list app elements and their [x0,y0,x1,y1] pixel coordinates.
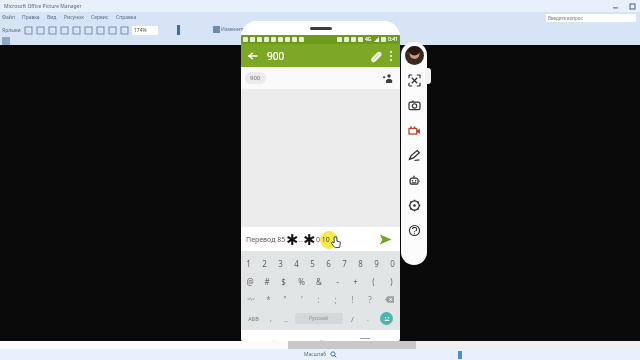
button[interactable]: 4 [288,254,304,272]
button[interactable]: Emoji [375,309,398,328]
staticText: : [317,294,320,305]
button[interactable]: : [310,290,327,309]
button[interactable]: * [260,290,276,309]
staticText: =\< [247,296,255,303]
button[interactable]: , [263,309,278,328]
button[interactable]: " [276,290,293,309]
button[interactable]: Tool 3 [60,26,69,35]
staticText: % [298,276,305,287]
button[interactable]: Attach [366,47,384,65]
button[interactable]: Tool 2 [48,26,57,35]
staticText: Изменить рисунки [221,26,267,33]
staticText: Ярлыки [2,27,21,34]
staticText: Русский [309,315,329,322]
button[interactable]: ) [382,272,400,290]
button[interactable]: Русский [295,313,343,324]
staticText: 2 [262,258,267,269]
button[interactable]: Справка [116,14,137,21]
button[interactable]: Fullscreen [404,70,424,90]
button[interactable]: Send [376,230,394,248]
button[interactable]: Tool 4 [72,26,81,35]
button[interactable]: Вид [47,14,57,21]
staticText: - [336,276,339,287]
button[interactable]: Help [404,220,424,240]
button[interactable]: 7 [336,254,352,272]
staticText: ✱ [286,231,299,248]
button[interactable]: ; [327,290,344,309]
staticText: 9 [374,258,379,269]
button[interactable]: ! [344,290,361,309]
staticText: & [316,276,322,287]
button[interactable]: 8 [352,254,368,272]
button[interactable]: 5 [304,254,320,272]
button[interactable]: Рисунок [64,14,84,21]
button[interactable]: Profile [405,46,424,65]
button[interactable]: Tool 1 [36,26,45,35]
button[interactable]: Файл [2,14,15,21]
button[interactable]: # [258,272,275,290]
staticText: 8 [358,258,363,269]
button[interactable]: Minimize [612,3,619,10]
button[interactable]: $ [275,272,292,290]
button[interactable]: / [345,309,360,328]
button[interactable]: Backspace [378,290,400,309]
button[interactable]: Settings [404,195,424,215]
staticText: ( [372,276,375,287]
button[interactable]: Screenshot [404,95,424,115]
staticText: Вид [47,14,57,21]
button[interactable]: Recents [356,332,374,350]
button[interactable]: Add person [381,71,395,85]
button[interactable]: Robot [404,170,424,190]
button[interactable]: % [292,272,310,290]
button[interactable]: АБВ [243,309,263,328]
button[interactable]: Введите вопрос [546,14,636,22]
button[interactable]: Сервис [91,14,109,21]
button[interactable]: 6 [320,254,336,272]
button[interactable]: + [346,272,364,290]
button[interactable]: Back [267,332,285,350]
button[interactable]: ( [364,272,382,290]
staticText: 5 [310,258,315,269]
button[interactable]: _ [278,309,293,328]
staticText: * [266,294,271,305]
staticText: 0:41 [388,36,398,43]
staticText: АБВ [248,315,259,322]
button[interactable]: & [310,272,328,290]
button[interactable]: 3 [272,254,288,272]
button[interactable]: @ [241,272,258,290]
button[interactable]: Record [404,120,424,140]
staticText: Файл [2,14,15,21]
button[interactable]: 9 [368,254,384,272]
button[interactable]: Home [312,332,330,350]
button[interactable]: Tool 6 [96,26,105,35]
button[interactable]: - [328,272,346,290]
staticText: ! [351,294,354,305]
button[interactable]: Tool 5 [84,26,93,35]
button[interactable]: 2 [256,254,272,272]
button[interactable]: 900 [245,72,266,84]
button[interactable]: ' [293,290,310,309]
button[interactable]: =\< [241,290,260,309]
button[interactable]: 174% [132,26,158,35]
staticText: Microsoft Office Picture Manager [4,3,82,10]
button[interactable]: More options [384,49,398,63]
button[interactable]: Restore [629,3,636,10]
button[interactable]: ? [361,290,378,309]
button[interactable]: Правка [22,14,40,21]
button[interactable]: Изменить рисунки [213,26,267,35]
button[interactable]: Tool 8 [120,26,129,35]
button[interactable]: 1 [241,254,256,272]
button[interactable]: Back [245,48,261,64]
staticText: / [351,314,354,324]
button[interactable]: 0 [384,254,400,272]
button[interactable]: Tool 7 [108,26,117,35]
staticText: 0 [390,258,395,269]
button[interactable]: Tool 0 [24,26,33,35]
button[interactable]: . [360,309,375,328]
button[interactable]: Draw [404,145,424,165]
